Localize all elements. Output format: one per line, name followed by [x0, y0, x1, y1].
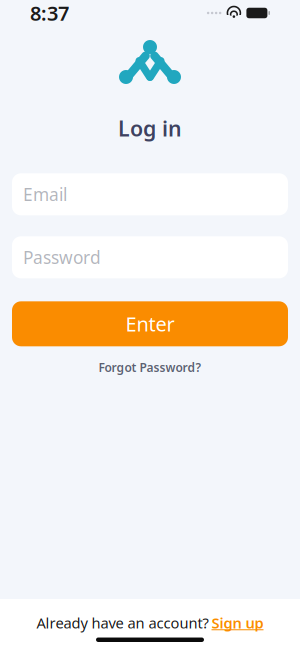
staticText: 8:37 — [30, 0, 69, 26]
button[interactable]: Already have an account? — [0, 599, 300, 637]
staticText: Password — [23, 246, 101, 269]
button[interactable]: Forgot Password? — [88, 355, 211, 379]
staticText: Email — [23, 183, 67, 206]
button[interactable]: Enter — [12, 301, 288, 346]
staticText: Log in — [118, 114, 182, 142]
staticText: Enter — [125, 311, 174, 337]
staticText: Already have an account? — [36, 613, 208, 632]
staticText: Forgot Password? — [98, 359, 201, 375]
button[interactable]: Password — [12, 236, 288, 278]
staticText: Sign up — [211, 613, 263, 632]
button[interactable]: Email — [12, 173, 288, 215]
